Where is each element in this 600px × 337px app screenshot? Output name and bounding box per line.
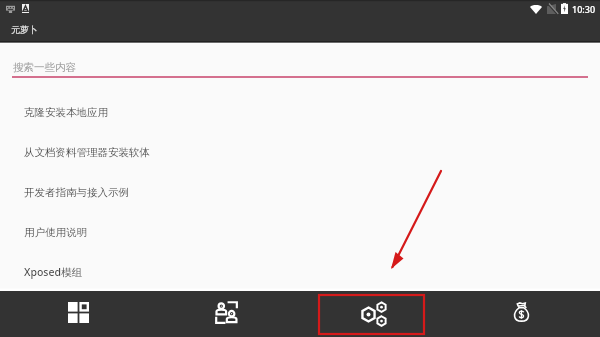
staticText: 开发者指南与接入示例 xyxy=(24,186,129,199)
button[interactable]: Xposed模组 xyxy=(0,252,600,291)
button[interactable]: 克隆安装本地应用 xyxy=(0,92,600,132)
button[interactable]: 用户使用说明 xyxy=(0,212,600,252)
staticText: 从文档资料管理器安装软体 xyxy=(24,146,150,159)
button[interactable]: 开发者指南与接入示例 xyxy=(0,172,600,212)
button[interactable]: Wallet xyxy=(447,291,595,337)
staticText: 克隆安装本地应用 xyxy=(24,106,108,119)
staticText: 元萝卜 xyxy=(11,24,38,35)
button[interactable]: 从文档资料管理器安装软体 xyxy=(0,132,600,172)
staticText: 10:30 xyxy=(572,3,596,15)
button[interactable]: Users xyxy=(152,291,299,337)
staticText: 搜索一些内容 xyxy=(13,61,76,74)
button[interactable]: Apps xyxy=(5,291,152,337)
staticText: 用户使用说明 xyxy=(24,226,87,239)
staticText: Xposed模组 xyxy=(24,265,82,279)
button[interactable]: 搜索一些内容 xyxy=(0,58,600,76)
button[interactable]: Modules xyxy=(299,291,447,337)
